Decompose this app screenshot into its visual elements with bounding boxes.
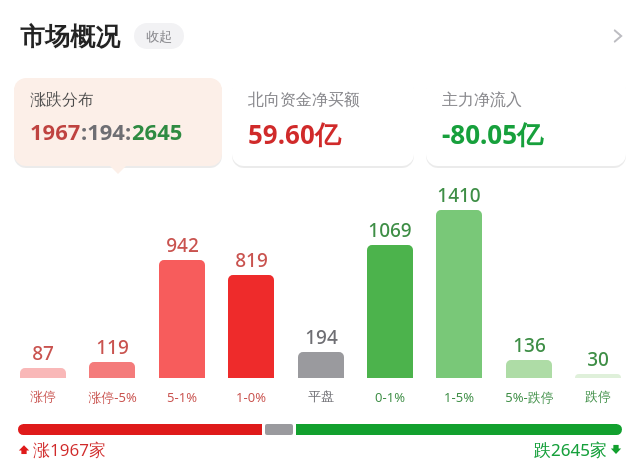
- staticText: 194: [305, 324, 338, 350]
- staticText: 1-0%: [236, 388, 266, 406]
- staticText: 30: [587, 346, 609, 372]
- staticText: 942: [166, 232, 199, 258]
- staticText: 平盘: [308, 388, 334, 404]
- button[interactable]: 北向资金净买额: [232, 78, 414, 166]
- staticText: -80.05亿: [442, 116, 544, 152]
- button[interactable]: [159, 260, 205, 378]
- staticText: 收起: [146, 28, 172, 44]
- staticText: :194:: [81, 116, 132, 146]
- button[interactable]: [367, 245, 413, 378]
- button[interactable]: 收起: [134, 23, 184, 49]
- staticText: 119: [96, 334, 129, 360]
- staticText: 2645: [132, 116, 183, 146]
- staticText: 跌停: [585, 388, 611, 404]
- staticText: 1967: [30, 116, 81, 146]
- staticText: 涨1967家: [33, 438, 106, 460]
- staticText: 涨跌分布: [30, 90, 94, 110]
- staticText: 跌2645家: [534, 438, 607, 460]
- button[interactable]: [436, 210, 482, 378]
- staticText: 0-1%: [375, 388, 405, 406]
- button[interactable]: [20, 368, 66, 378]
- button[interactable]: 主力净流入: [426, 78, 626, 166]
- staticText: 主力净流入: [442, 90, 522, 110]
- staticText: 北向资金净买额: [248, 90, 360, 110]
- staticText: 市场概况: [20, 21, 120, 52]
- button[interactable]: 涨跌分布: [14, 78, 222, 166]
- staticText: 5-1%: [167, 388, 197, 406]
- staticText: 1069: [368, 217, 412, 243]
- button[interactable]: [89, 362, 135, 378]
- button[interactable]: [228, 275, 274, 378]
- staticText: 136: [513, 332, 546, 358]
- staticText: 59.60亿: [248, 116, 341, 152]
- button[interactable]: [575, 374, 621, 378]
- staticText: 5%-跌停: [505, 388, 554, 406]
- staticText: 87: [32, 340, 54, 366]
- staticText: 涨停-5%: [88, 388, 137, 406]
- button[interactable]: [506, 360, 552, 378]
- button[interactable]: [18, 424, 622, 435]
- staticText: 1410: [437, 182, 481, 208]
- button[interactable]: [298, 352, 344, 378]
- staticText: 涨停: [30, 388, 56, 404]
- staticText: 819: [235, 247, 268, 273]
- button[interactable]: More: [596, 14, 640, 58]
- staticText: 1-5%: [444, 388, 474, 406]
